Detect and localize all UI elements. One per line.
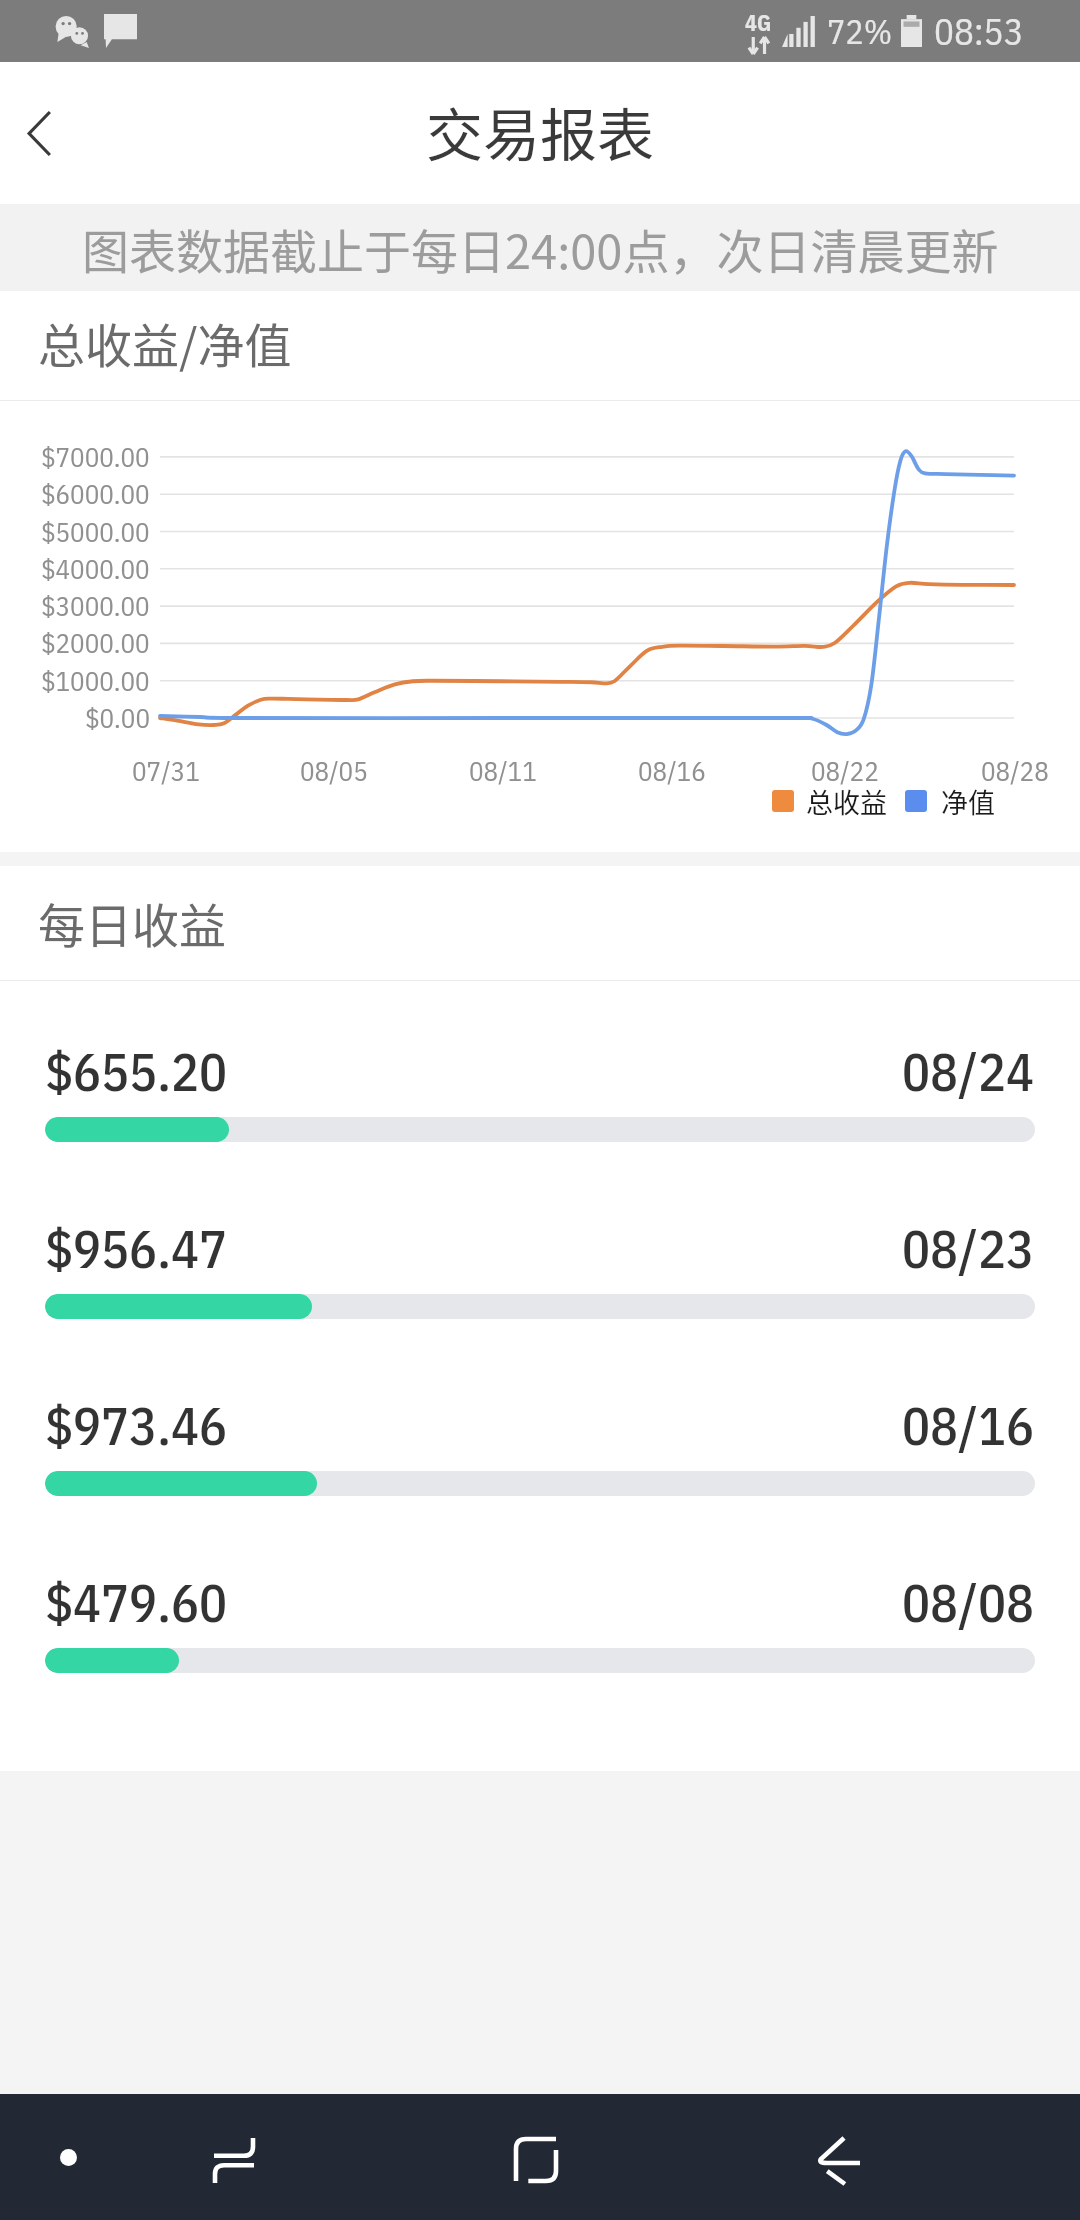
button[interactable]: Home [476,2097,596,2220]
staticText: 07/31 [132,753,200,788]
staticText: $479.60 [45,1569,228,1637]
button[interactable]: $479.60 [0,1569,1080,1746]
staticText: 08/05 [300,753,368,788]
staticText: 08/22 [811,753,879,788]
staticText: 净值 [941,782,995,821]
staticText: 08/08 [902,1569,1035,1637]
staticText: 08/24 [902,1038,1035,1106]
staticText: 每日收益 [38,888,226,956]
staticText: $655.20 [45,1038,228,1106]
staticText: $2000.00 [41,625,150,660]
button[interactable]: $655.20 [0,1038,1080,1215]
staticText: $973.46 [45,1392,228,1460]
staticText: 交易报表 [426,90,654,173]
staticText: $956.47 [45,1215,228,1283]
button[interactable]: $956.47 [0,1215,1080,1392]
button[interactable]: $973.46 [0,1392,1080,1569]
button[interactable]: Recent apps [174,2097,294,2220]
button[interactable]: Back [0,62,78,204]
staticText: 总收益/净值 [38,308,292,376]
staticText: $1000.00 [41,663,150,698]
button[interactable]: Back [779,2098,899,2220]
staticText: 08/16 [902,1392,1035,1460]
staticText: $3000.00 [41,588,150,623]
staticText: 总收益 [806,782,887,821]
staticText: $7000.00 [41,439,150,474]
staticText: 图表数据截止于每日24:00点，次日清晨更新 [82,214,999,282]
staticText: 08:53 [934,7,1024,55]
staticText: $0.00 [85,700,150,735]
button[interactable]: Assistant [8,2094,128,2220]
staticText: 72% [827,9,893,53]
staticText: 4G [745,8,772,37]
staticText: $6000.00 [41,476,150,511]
staticText: $4000.00 [41,551,150,586]
staticText: 08/28 [981,753,1049,788]
staticText: 08/23 [902,1215,1035,1283]
staticText: $5000.00 [41,514,150,549]
staticText: 08/11 [469,753,537,788]
staticText: 08/16 [638,753,706,788]
